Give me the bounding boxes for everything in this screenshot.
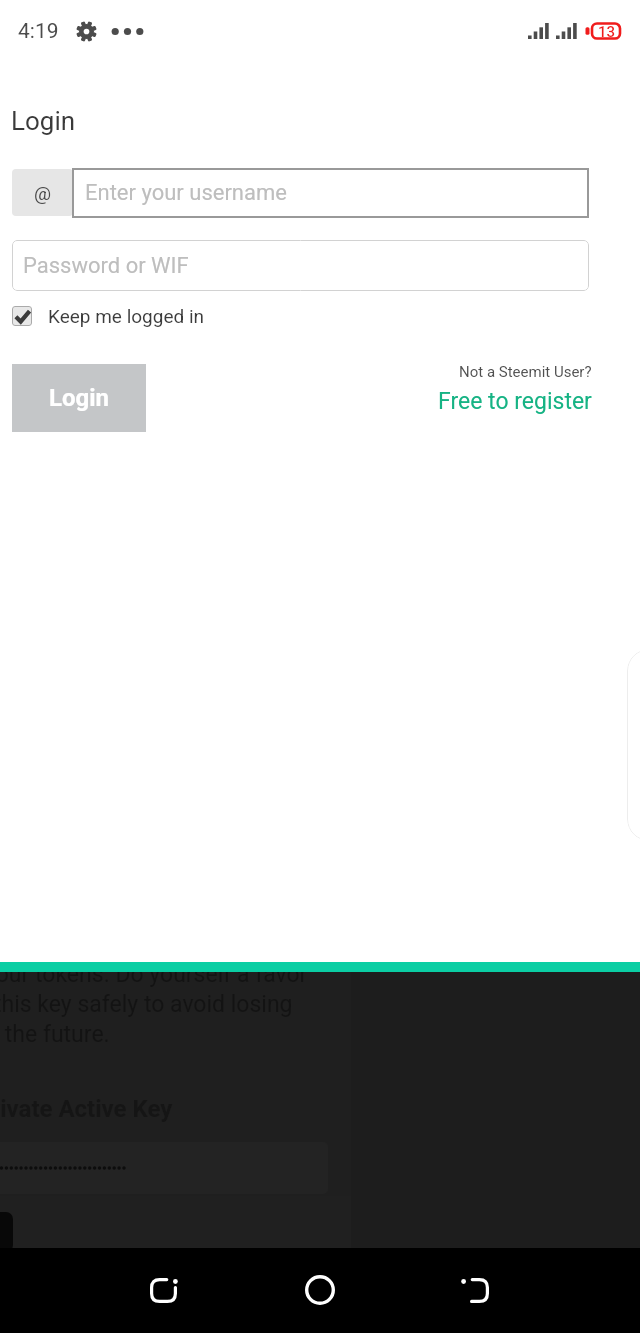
- staticText: it in the future.: [0, 1021, 110, 1048]
- staticText: Login: [49, 384, 110, 412]
- button[interactable]: Free to register: [438, 388, 592, 415]
- button[interactable]: Recent apps: [131, 1258, 195, 1322]
- button[interactable]: Password or WIF: [12, 240, 589, 291]
- staticText: Password or WIF: [23, 253, 189, 279]
- button[interactable]: Login: [12, 364, 146, 432]
- staticText: Keep me logged in: [48, 305, 205, 327]
- staticText: and save this key safely to avoid losing: [0, 991, 293, 1018]
- button[interactable]: Enter your username: [72, 168, 589, 218]
- button[interactable]: Back: [443, 1258, 507, 1322]
- staticText: 13: [598, 23, 616, 39]
- staticText: Not a Steemit User?: [459, 363, 592, 381]
- staticText: Login: [11, 106, 76, 136]
- staticText: 4:19: [18, 19, 59, 44]
- staticText: Private Active Key: [0, 1095, 173, 1123]
- button[interactable]: Home: [288, 1258, 352, 1322]
- staticText: in your tokens. Do yourself a favor: [0, 961, 308, 988]
- button[interactable]: @: [12, 169, 73, 216]
- button[interactable]: Keep me logged in: [12, 304, 205, 328]
- staticText: @: [34, 182, 52, 204]
- staticText: Enter your username: [85, 180, 287, 206]
